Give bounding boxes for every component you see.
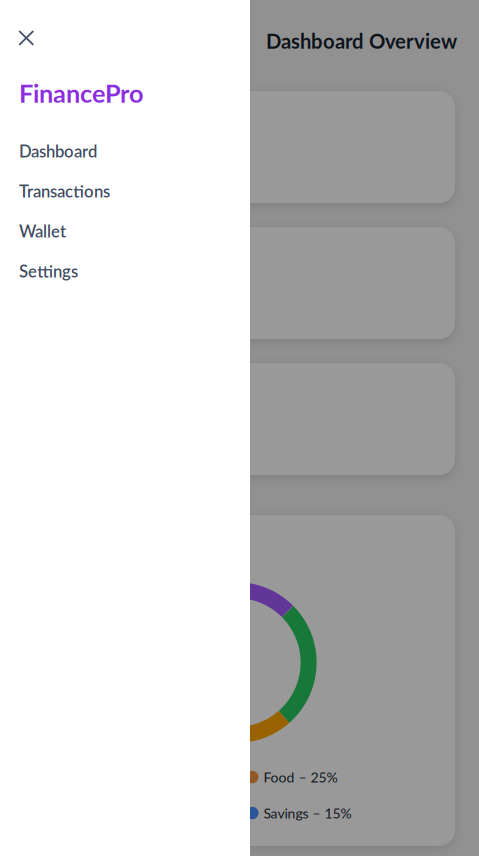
staticText: Food – 25% <box>263 769 337 785</box>
button[interactable]: Close menu <box>8 20 44 56</box>
staticText: Wallet <box>19 221 66 241</box>
staticText: Settings <box>19 261 78 281</box>
staticText: Dashboard Overview <box>266 29 457 53</box>
staticText: Transactions <box>19 181 110 201</box>
staticText: Dashboard <box>19 141 97 161</box>
button[interactable]: Transactions <box>19 182 233 200</box>
button[interactable]: Settings <box>19 262 233 280</box>
button[interactable]: Wallet <box>19 222 233 240</box>
button[interactable]: Dashboard <box>19 142 233 160</box>
staticText: Savings – 15% <box>263 805 351 821</box>
staticText: FinancePro <box>19 78 144 108</box>
